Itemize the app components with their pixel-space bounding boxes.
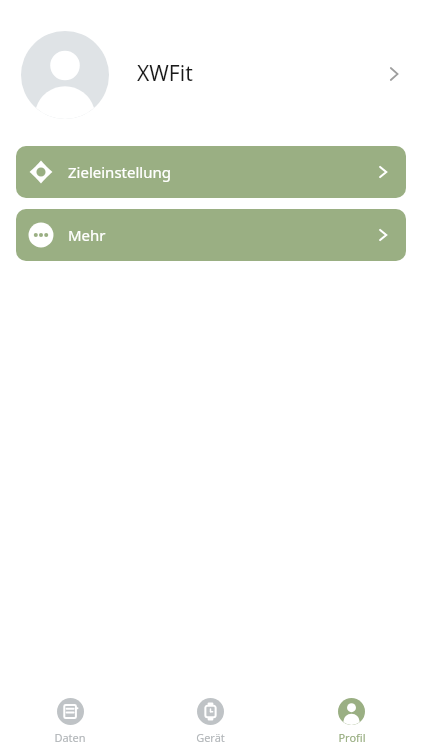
staticText: Gerät [196,730,225,745]
staticText: Daten [54,730,86,745]
staticText: XWFit [137,59,193,88]
button[interactable]: Gerät [140,682,281,750]
button[interactable]: Mehr [16,209,406,261]
button[interactable]: Profil [281,682,422,750]
button[interactable]: Daten [0,682,140,750]
other: Profil [338,698,365,725]
other: Daten [57,698,84,725]
staticText: Zieleinstellung [68,162,171,182]
button[interactable]: XWFit [0,0,422,146]
staticText: Mehr [68,225,106,245]
staticText: Profil [338,730,366,745]
button[interactable]: Zieleinstellung [16,146,406,198]
other: Gerät [197,698,224,725]
